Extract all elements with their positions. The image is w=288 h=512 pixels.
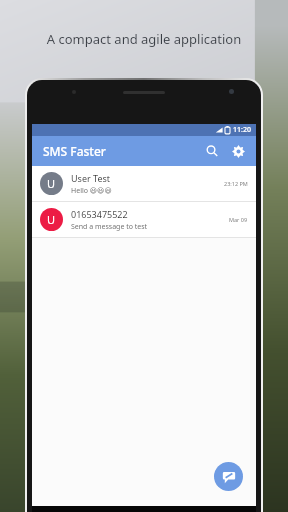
button[interactable]: U — [32, 166, 256, 201]
staticText: A compact and agile application — [0, 30, 288, 48]
staticText: SMS Faster — [43, 143, 106, 159]
button[interactable]: U — [32, 202, 256, 237]
staticText: 11:20 — [233, 125, 251, 135]
staticText: Hello 😃😃😃 — [71, 186, 112, 196]
staticText: U — [47, 212, 56, 227]
button[interactable]: Compose message — [214, 462, 243, 491]
button[interactable]: Settings — [227, 140, 249, 162]
staticText: Send a message to test — [71, 222, 148, 232]
staticText: U — [47, 176, 56, 191]
staticText: 23:12 PM — [224, 180, 248, 187]
staticText: Mar 09 — [229, 216, 248, 223]
staticText: 01653475522 — [71, 208, 128, 220]
staticText: User Test — [71, 172, 111, 184]
button[interactable]: Search — [201, 140, 223, 162]
